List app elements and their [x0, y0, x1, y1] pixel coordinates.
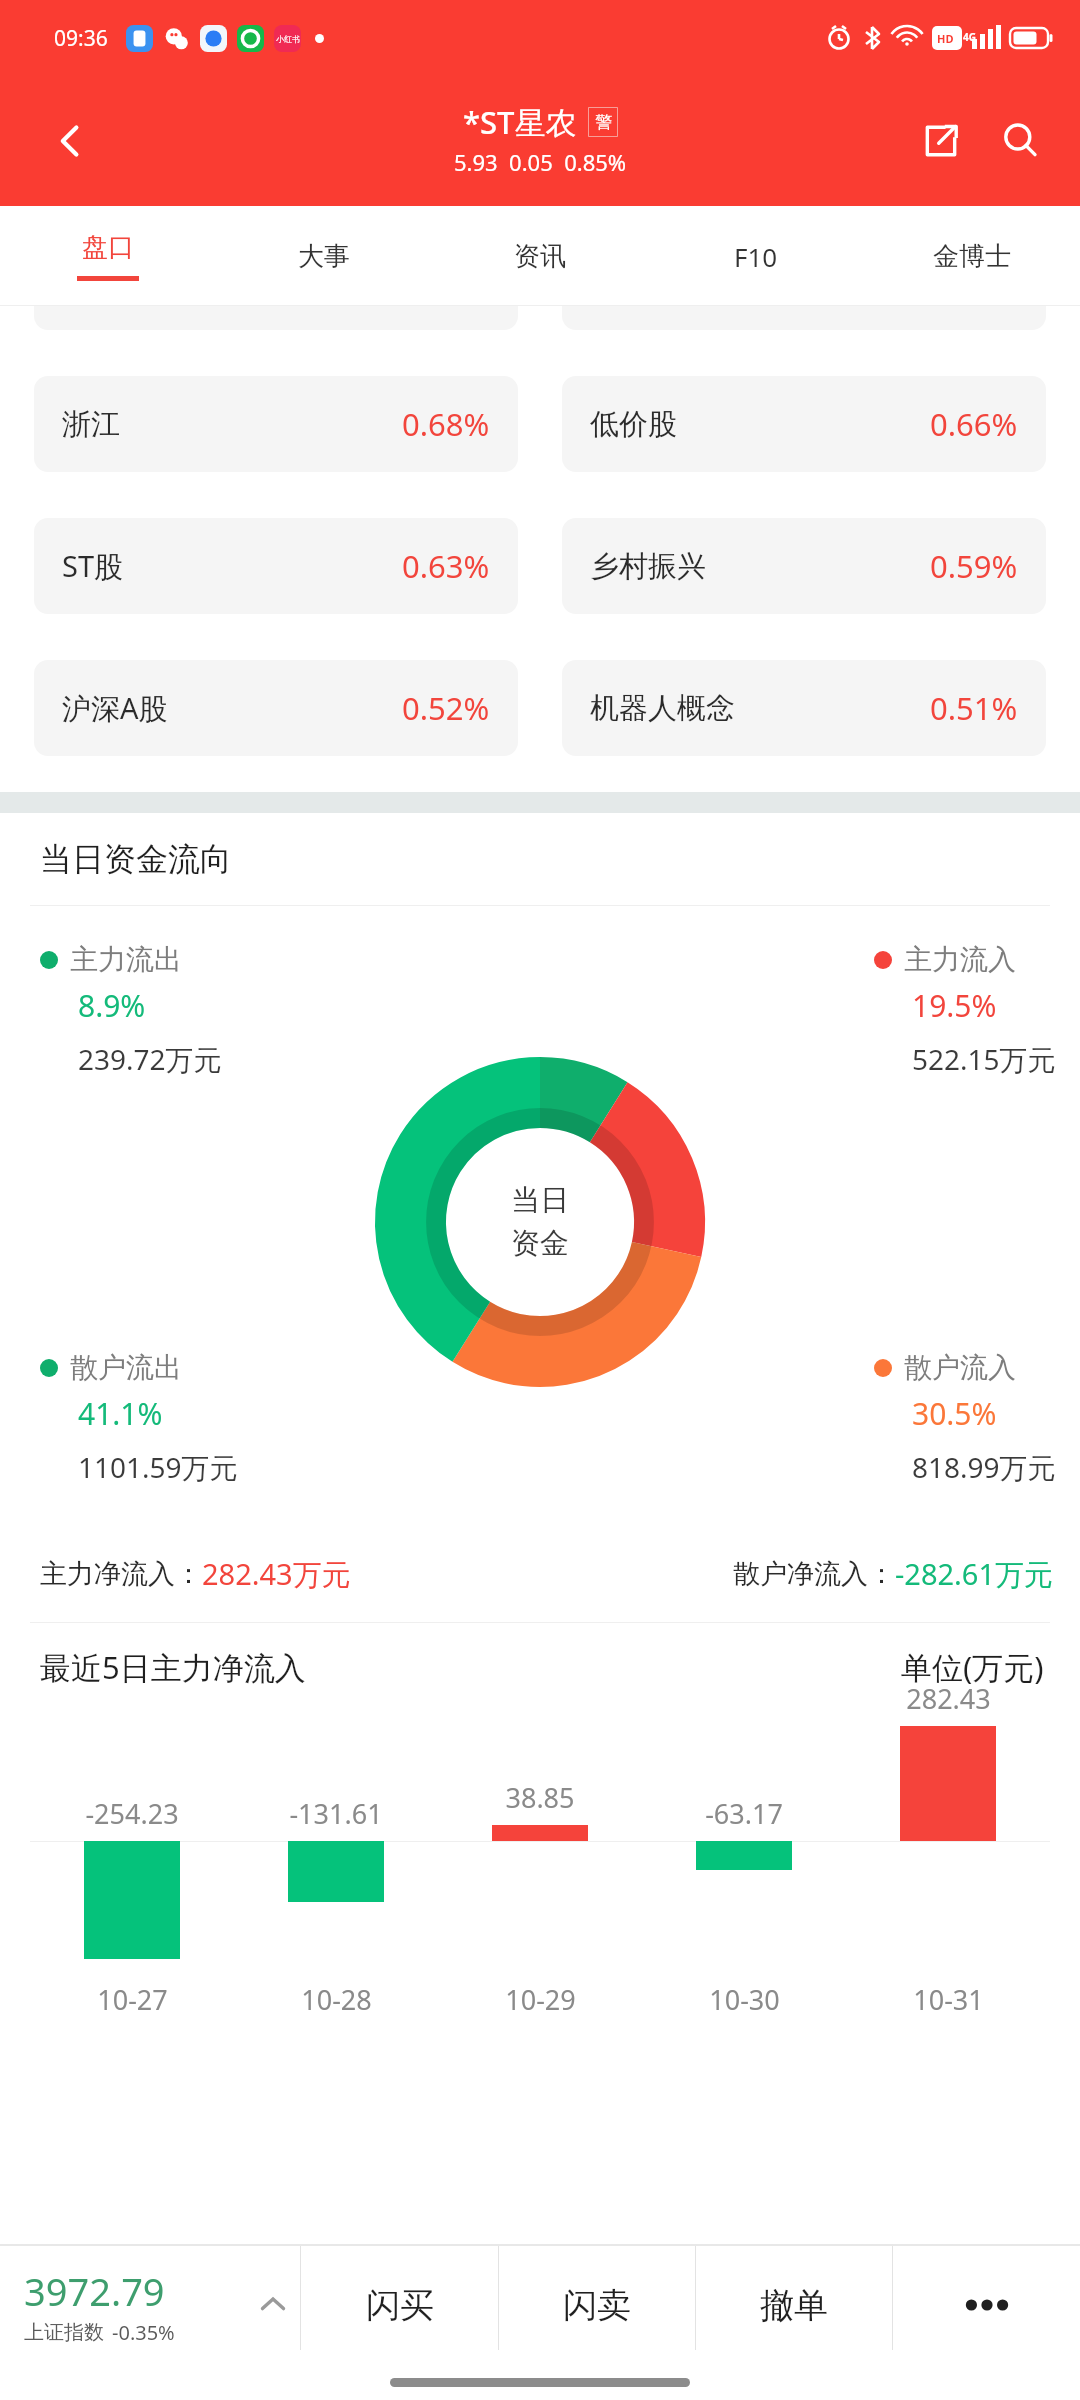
button[interactable]: 闪卖: [499, 2246, 695, 2364]
staticText: *ST星农: [463, 101, 577, 143]
staticText: 单位(万元): [901, 1646, 1044, 1688]
staticText: 散户流出: [70, 1350, 182, 1385]
staticText: 机器人概念: [590, 690, 735, 727]
staticText: 警: [595, 112, 612, 133]
staticText: -63.17: [705, 1795, 783, 1832]
button[interactable]: ST股: [34, 518, 518, 614]
staticText: 10-27: [97, 1981, 168, 2018]
staticText: F10: [734, 239, 778, 274]
staticText: 闪买: [366, 2284, 434, 2327]
staticText: 818.99万元: [912, 1448, 1056, 1486]
staticText: 资金: [511, 1225, 569, 1262]
staticText: 最近5日主力净流入: [40, 1646, 306, 1688]
staticText: 散户流入: [904, 1350, 1016, 1385]
staticText: 41.1%: [78, 1393, 163, 1434]
staticText: 0.68%: [402, 403, 490, 445]
staticText: 资讯: [514, 240, 566, 273]
staticText: 282.43万元: [202, 1554, 351, 1594]
staticText: 主力净流入：: [40, 1557, 202, 1591]
button[interactable]: More: [893, 2246, 1080, 2364]
button[interactable]: 沪深A股: [34, 660, 518, 756]
button[interactable]: 资讯: [432, 206, 648, 306]
staticText: 撤单: [760, 2284, 828, 2327]
staticText: 当日资金流向: [40, 839, 232, 879]
button[interactable]: 机器人概念: [562, 660, 1046, 756]
staticText: 金博士: [933, 240, 1011, 273]
staticText: -282.61万元: [895, 1554, 1054, 1594]
button[interactable]: Search: [990, 110, 1052, 172]
button[interactable]: Back: [40, 111, 100, 171]
staticText: 8.9%: [78, 985, 146, 1026]
button[interactable]: 乡村振兴: [562, 518, 1046, 614]
staticText: -0.35%: [112, 2319, 175, 2346]
staticText: 38.85: [505, 1779, 575, 1816]
staticText: 19.5%: [912, 985, 997, 1026]
button[interactable]: 3972.79: [0, 2246, 300, 2364]
staticText: 4G: [963, 30, 976, 44]
staticText: 浙江: [62, 406, 120, 443]
staticText: 乡村振兴: [590, 548, 706, 585]
staticText: 0.52%: [402, 687, 490, 729]
staticText: 0.59%: [930, 545, 1018, 587]
staticText: 闪卖: [563, 2284, 631, 2327]
staticText: 散户净流入：: [733, 1557, 895, 1591]
staticText: 0.63%: [402, 545, 490, 587]
staticText: 3972.79: [24, 2265, 165, 2317]
staticText: 5.93 0.05 0.85%: [454, 147, 627, 177]
staticText: 主力流出: [70, 942, 182, 977]
other: Expand: [246, 2278, 300, 2332]
staticText: 0.66%: [930, 403, 1018, 445]
staticText: 10-31: [913, 1981, 984, 2018]
staticText: 09:36: [54, 24, 108, 53]
staticText: 主力流入: [904, 942, 1016, 977]
staticText: 沪深A股: [62, 688, 168, 728]
staticText: 522.15万元: [912, 1040, 1056, 1078]
staticText: 10-28: [301, 1981, 372, 2018]
staticText: ST股: [62, 546, 124, 586]
staticText: 282.43: [906, 1680, 991, 1717]
button[interactable]: 大事: [216, 206, 432, 306]
staticText: -131.61: [289, 1795, 383, 1832]
button[interactable]: 低价股: [562, 376, 1046, 472]
button[interactable]: 闪买: [301, 2246, 498, 2364]
staticText: 1101.59万元: [78, 1448, 238, 1486]
staticText: 10-30: [709, 1981, 780, 2018]
staticText: 低价股: [590, 406, 677, 443]
staticText: 当日: [511, 1182, 569, 1219]
staticText: 小红书: [276, 34, 300, 44]
staticText: -254.23: [85, 1795, 179, 1832]
button[interactable]: 浙江: [34, 376, 518, 472]
button[interactable]: 撤单: [696, 2246, 892, 2364]
staticText: 239.72万元: [78, 1040, 222, 1078]
staticText: 0.51%: [930, 687, 1018, 729]
staticText: 盘口: [82, 231, 134, 264]
button[interactable]: Share: [910, 110, 972, 172]
staticText: 30.5%: [912, 1393, 997, 1434]
staticText: 上证指数: [24, 2320, 104, 2345]
staticText: HD: [937, 31, 954, 46]
button[interactable]: 盘口: [0, 206, 216, 306]
button[interactable]: F10: [648, 206, 864, 306]
staticText: 大事: [298, 240, 350, 273]
button[interactable]: 金博士: [864, 206, 1080, 306]
staticText: 10-29: [505, 1981, 576, 2018]
